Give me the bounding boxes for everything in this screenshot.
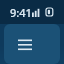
staticText: 9:41 (10, 5, 32, 20)
button[interactable]: Menu (12, 31, 38, 57)
